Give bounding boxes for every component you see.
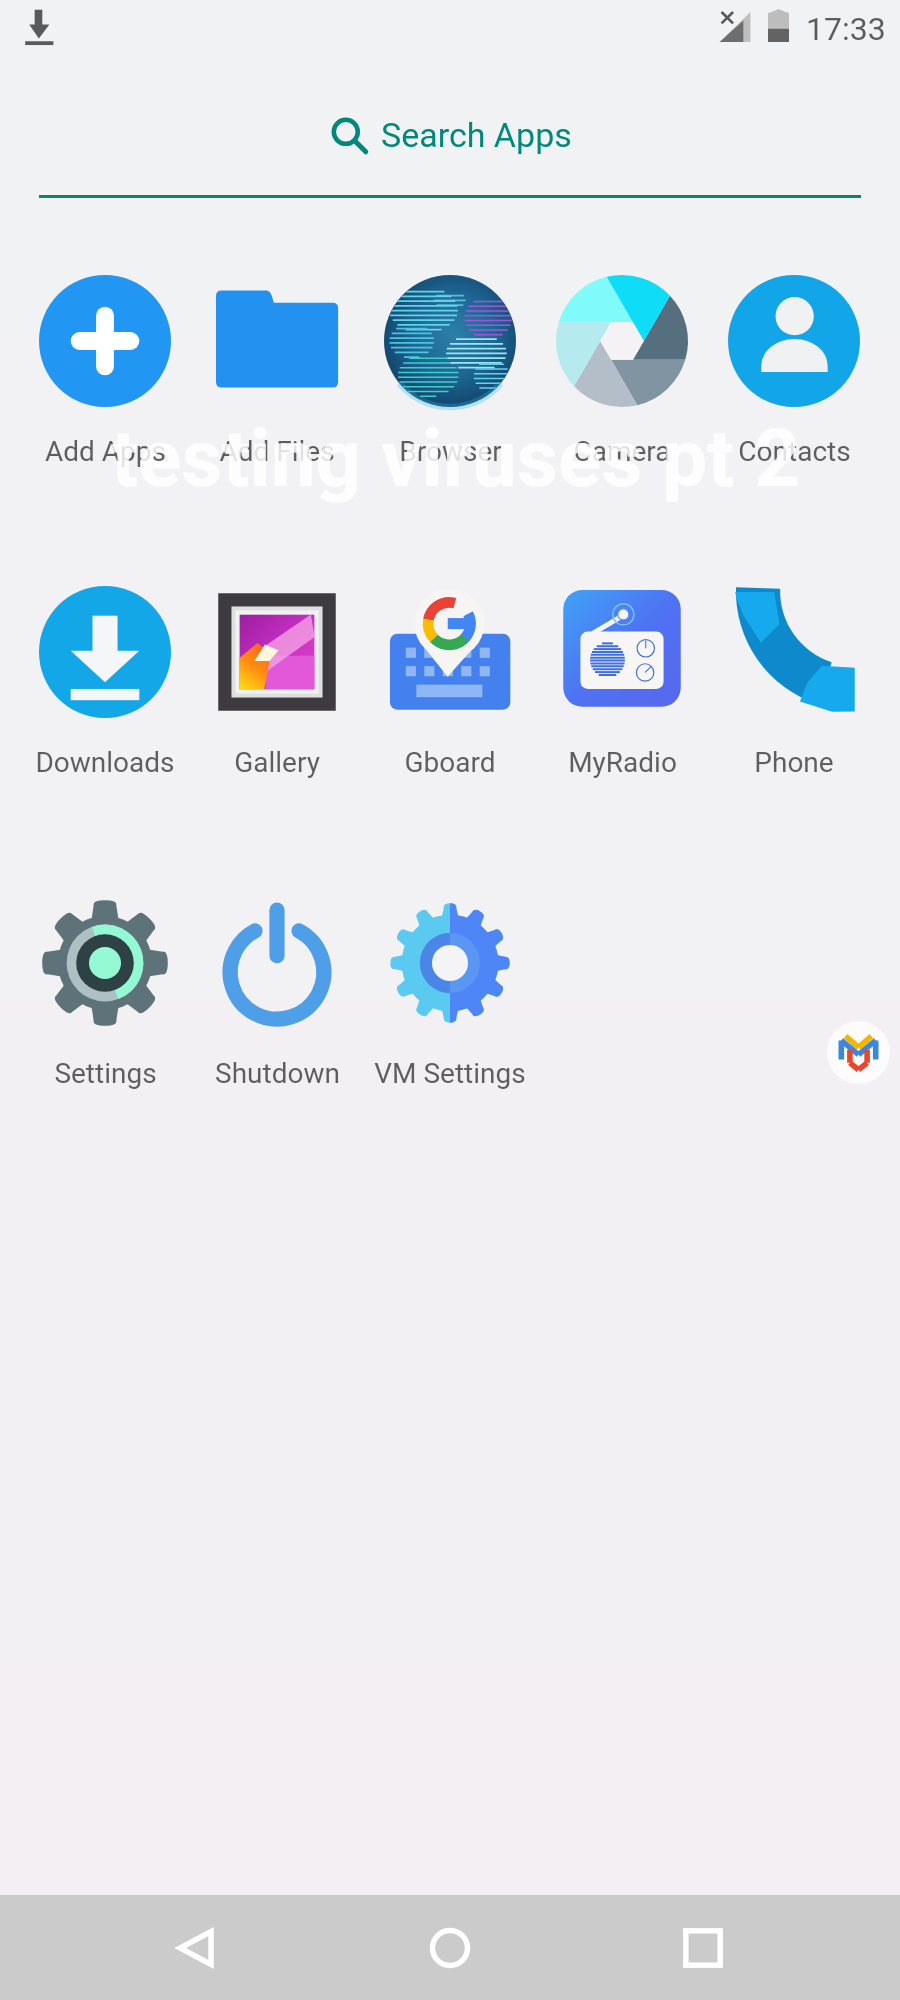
staticText: Search Apps: [381, 115, 572, 155]
button[interactable]: Add Apps: [19, 259, 191, 481]
staticText: Contacts: [738, 435, 851, 468]
button[interactable]: Add Files: [191, 259, 363, 481]
button[interactable]: Settings: [19, 881, 191, 1103]
button[interactable]: Gallery: [191, 570, 363, 792]
staticText: Add Apps: [45, 435, 166, 468]
button[interactable]: Shutdown: [191, 881, 363, 1103]
button[interactable]: Search Apps: [329, 115, 572, 155]
staticText: MyRadio: [568, 746, 677, 779]
button[interactable]: Contacts: [708, 259, 880, 481]
button[interactable]: Camera: [536, 259, 708, 481]
button[interactable]: Browser: [364, 259, 536, 481]
staticText: Gboard: [404, 746, 496, 779]
button[interactable]: VM Settings: [364, 881, 536, 1103]
staticText: Browser: [399, 435, 502, 468]
staticText: Camera: [573, 435, 671, 468]
staticText: Shutdown: [215, 1057, 340, 1090]
staticText: Downloads: [35, 746, 175, 779]
staticText: Add Files: [219, 435, 335, 468]
staticText: Settings: [54, 1057, 157, 1090]
button[interactable]: Mobizen recorder: [827, 1021, 890, 1084]
button[interactable]: Home: [390, 1895, 510, 2000]
button[interactable]: Gboard: [364, 570, 536, 792]
button[interactable]: Phone: [708, 570, 880, 792]
button[interactable]: Downloads: [19, 570, 191, 792]
button[interactable]: MyRadio: [536, 570, 708, 792]
staticText: VM Settings: [374, 1057, 526, 1090]
staticText: 17:33: [806, 10, 886, 48]
staticText: Gallery: [234, 746, 320, 779]
button[interactable]: Back: [137, 1895, 257, 2000]
staticText: testing viruses pt 2: [111, 412, 801, 506]
staticText: Phone: [754, 746, 834, 779]
button[interactable]: Recent apps: [643, 1895, 763, 2000]
